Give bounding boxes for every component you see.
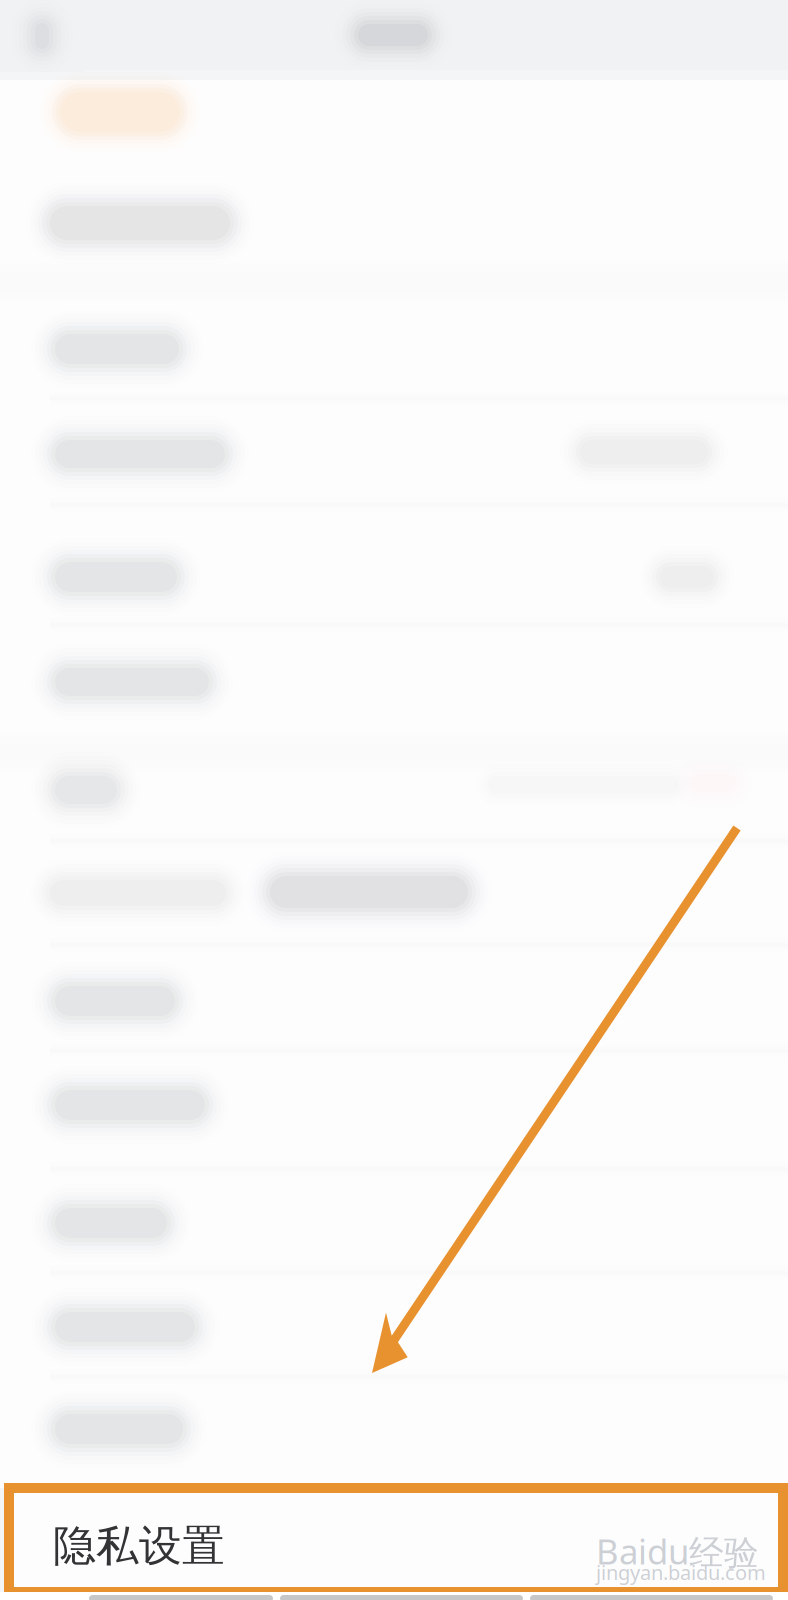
staticText: jingyan.baidu.com bbox=[596, 1559, 766, 1586]
button[interactable]: 隐私设置 bbox=[9, 1488, 783, 1592]
staticText: Baidu经验 bbox=[596, 1528, 759, 1574]
button[interactable]: Back bbox=[0, 0, 84, 72]
staticText: 隐私设置 bbox=[53, 1520, 225, 1572]
